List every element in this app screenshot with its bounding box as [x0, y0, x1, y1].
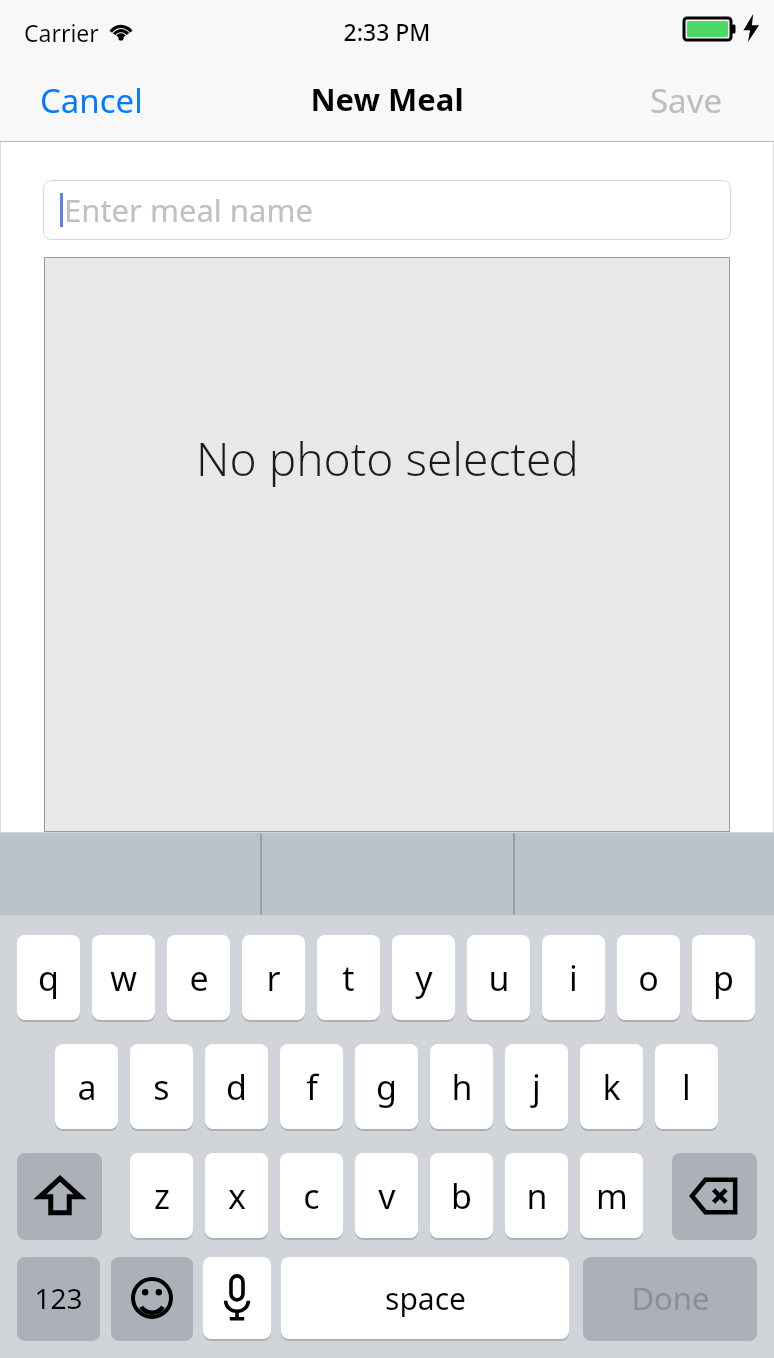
- button[interactable]: p: [692, 935, 755, 1020]
- button[interactable]: Done: [583, 1257, 757, 1339]
- staticText: m: [596, 1173, 628, 1219]
- button[interactable]: g: [355, 1044, 418, 1129]
- button[interactable]: Cancel: [30, 72, 153, 129]
- button[interactable]: d: [205, 1044, 268, 1129]
- button[interactable]: z: [130, 1153, 193, 1238]
- staticText: k: [602, 1064, 621, 1110]
- staticText: y: [415, 955, 433, 1001]
- staticText: p: [713, 955, 734, 1001]
- staticText: i: [569, 955, 578, 1001]
- staticText: Cancel: [40, 78, 143, 123]
- staticText: x: [228, 1173, 246, 1219]
- button[interactable]: i: [542, 935, 605, 1020]
- staticText: New Meal: [0, 78, 774, 120]
- staticText: q: [38, 955, 59, 1001]
- staticText: No photo selected: [196, 427, 579, 490]
- staticText: n: [526, 1173, 548, 1219]
- button[interactable]: c: [280, 1153, 343, 1238]
- staticText: v: [378, 1173, 396, 1219]
- staticText: o: [638, 955, 659, 1001]
- staticText: Enter meal name: [64, 189, 313, 231]
- button[interactable]: s: [130, 1044, 193, 1129]
- button[interactable]: Enter meal name: [43, 180, 731, 240]
- staticText: b: [451, 1173, 472, 1219]
- staticText: j: [532, 1064, 541, 1110]
- staticText: s: [153, 1064, 170, 1110]
- button[interactable]: r: [242, 935, 305, 1020]
- staticText: f: [306, 1064, 318, 1110]
- button[interactable]: No photo selected: [44, 257, 730, 832]
- staticText: c: [303, 1173, 320, 1219]
- staticText: a: [77, 1064, 97, 1110]
- staticText: r: [266, 955, 281, 1001]
- button[interactable]: l: [655, 1044, 718, 1129]
- button[interactable]: Dictate: [203, 1257, 271, 1339]
- button[interactable]: b: [430, 1153, 493, 1238]
- staticText: t: [342, 955, 355, 1001]
- button[interactable]: 123: [17, 1257, 100, 1339]
- button[interactable]: Emoji: [111, 1257, 193, 1339]
- button[interactable]: Backspace: [672, 1153, 757, 1238]
- staticText: g: [376, 1064, 397, 1110]
- button[interactable]: v: [355, 1153, 418, 1238]
- staticText: space: [385, 1278, 466, 1319]
- button[interactable]: w: [92, 935, 155, 1020]
- staticText: e: [189, 955, 209, 1001]
- staticText: 2:33 PM: [0, 16, 774, 47]
- staticText: d: [226, 1064, 247, 1110]
- button[interactable]: k: [580, 1044, 643, 1129]
- staticText: z: [154, 1173, 170, 1219]
- staticText: Done: [631, 1277, 710, 1319]
- button[interactable]: j: [505, 1044, 568, 1129]
- staticText: Carrier: [24, 17, 99, 48]
- button[interactable]: m: [580, 1153, 643, 1238]
- button[interactable]: q: [17, 935, 80, 1020]
- button[interactable]: o: [617, 935, 680, 1020]
- button[interactable]: x: [205, 1153, 268, 1238]
- staticText: l: [682, 1064, 691, 1110]
- staticText: u: [488, 955, 510, 1001]
- button[interactable]: a: [55, 1044, 118, 1129]
- button[interactable]: h: [430, 1044, 493, 1129]
- staticText: Save: [650, 78, 723, 123]
- button[interactable]: e: [167, 935, 230, 1020]
- staticText: w: [110, 955, 137, 1001]
- button[interactable]: u: [467, 935, 530, 1020]
- staticText: h: [451, 1064, 473, 1110]
- button[interactable]: y: [392, 935, 455, 1020]
- button[interactable]: space: [281, 1257, 569, 1339]
- button[interactable]: f: [280, 1044, 343, 1129]
- button[interactable]: Save: [640, 72, 733, 129]
- button[interactable]: t: [317, 935, 380, 1020]
- button[interactable]: n: [505, 1153, 568, 1238]
- button[interactable]: Shift: [17, 1153, 102, 1238]
- staticText: 123: [34, 1279, 83, 1317]
